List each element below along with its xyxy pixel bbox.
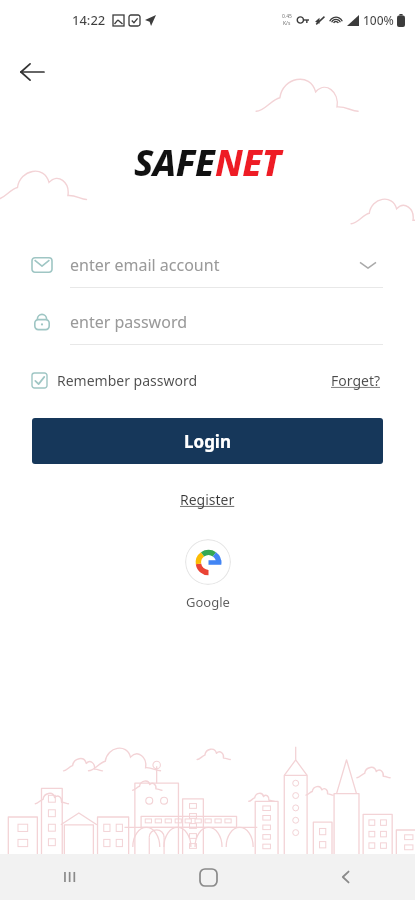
staticText: enter email account: [70, 254, 220, 276]
staticText: Google: [186, 593, 230, 611]
button[interactable]: enter email account: [32, 243, 383, 287]
button[interactable]: Show accounts: [353, 250, 383, 280]
button[interactable]: Sign in with Google: [185, 539, 231, 585]
staticText: 0.45: [282, 13, 292, 20]
button[interactable]: Register: [172, 486, 243, 513]
staticText: NET: [215, 138, 281, 187]
staticText: Remember password: [57, 371, 198, 390]
button[interactable]: Back: [277, 854, 415, 900]
staticText: Register: [180, 490, 235, 509]
staticText: 14:22: [72, 11, 106, 29]
staticText: Forget?: [331, 371, 381, 390]
staticText: K/s: [283, 20, 291, 27]
staticText: Login: [184, 430, 232, 453]
button[interactable]: Forget?: [329, 367, 383, 394]
button[interactable]: Back: [8, 48, 56, 96]
button[interactable]: Home: [139, 854, 277, 900]
staticText: enter password: [70, 311, 188, 333]
button[interactable]: Recents: [0, 854, 139, 900]
button[interactable]: Login: [32, 418, 383, 464]
staticText: SAFE: [134, 138, 215, 187]
button[interactable]: Remember password: [32, 367, 198, 394]
button[interactable]: enter password: [32, 300, 383, 344]
staticText: 100%: [363, 12, 394, 28]
